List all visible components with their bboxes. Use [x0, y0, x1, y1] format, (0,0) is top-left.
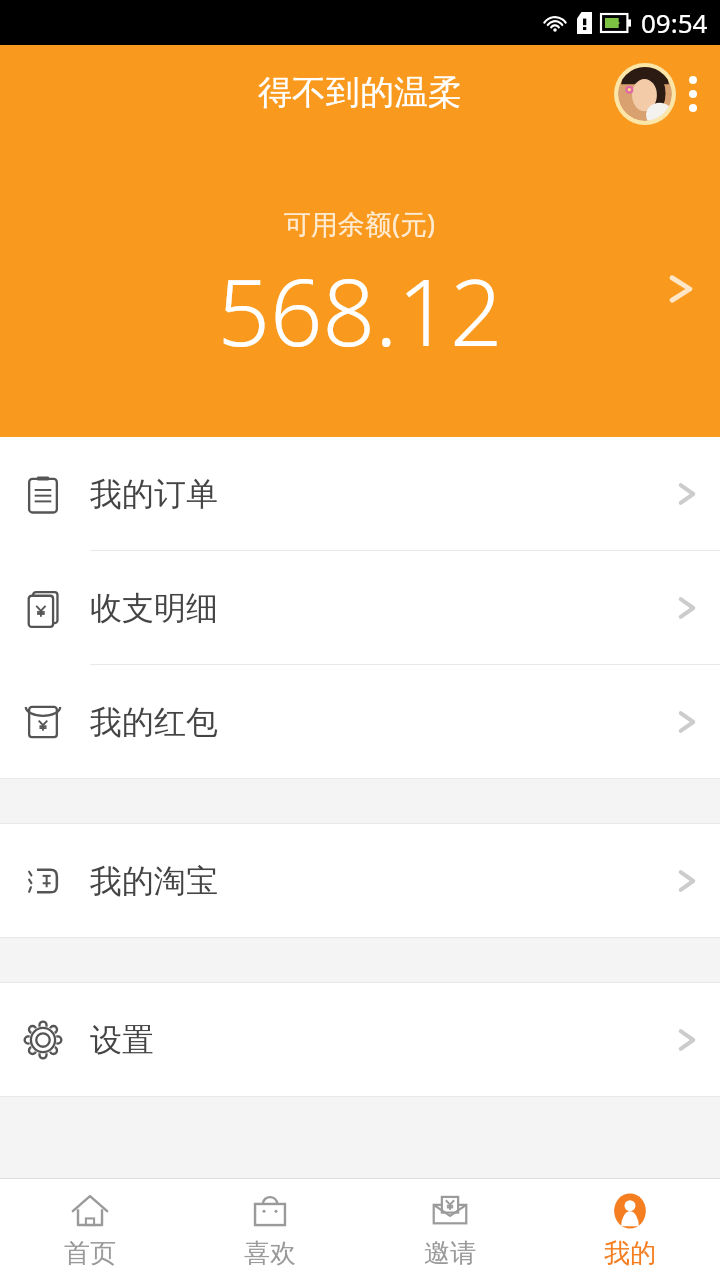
button[interactable]: 我的订单: [0, 437, 720, 550]
staticText: 我的红包: [90, 702, 218, 742]
button[interactable]: More options: [676, 63, 710, 125]
staticText: 喜欢: [244, 1237, 296, 1270]
button[interactable]: 我的红包: [0, 665, 720, 778]
staticText: 邀请: [424, 1237, 476, 1270]
button[interactable]: Profile avatar: [614, 63, 676, 125]
staticText: 我的: [604, 1237, 656, 1270]
staticText: 收支明细: [90, 588, 218, 628]
staticText: 设置: [90, 1020, 154, 1060]
button[interactable]: 收支明细: [0, 551, 720, 664]
button[interactable]: 邀请: [360, 1179, 540, 1280]
staticText: 可用余额(元): [284, 205, 436, 242]
button[interactable]: 首页: [0, 1179, 180, 1280]
button[interactable]: 可用余额(元): [0, 205, 720, 373]
staticText: 568.12: [217, 248, 503, 373]
button[interactable]: 我的: [540, 1179, 720, 1280]
button[interactable]: 喜欢: [180, 1179, 360, 1280]
staticText: 我的订单: [90, 474, 218, 514]
staticText: 我的淘宝: [90, 861, 218, 901]
button[interactable]: 设置: [0, 983, 720, 1096]
staticText: 得不到的温柔: [258, 71, 462, 114]
staticText: 首页: [64, 1237, 116, 1270]
staticText: 09:54: [641, 5, 708, 40]
button[interactable]: 我的淘宝: [0, 824, 720, 937]
